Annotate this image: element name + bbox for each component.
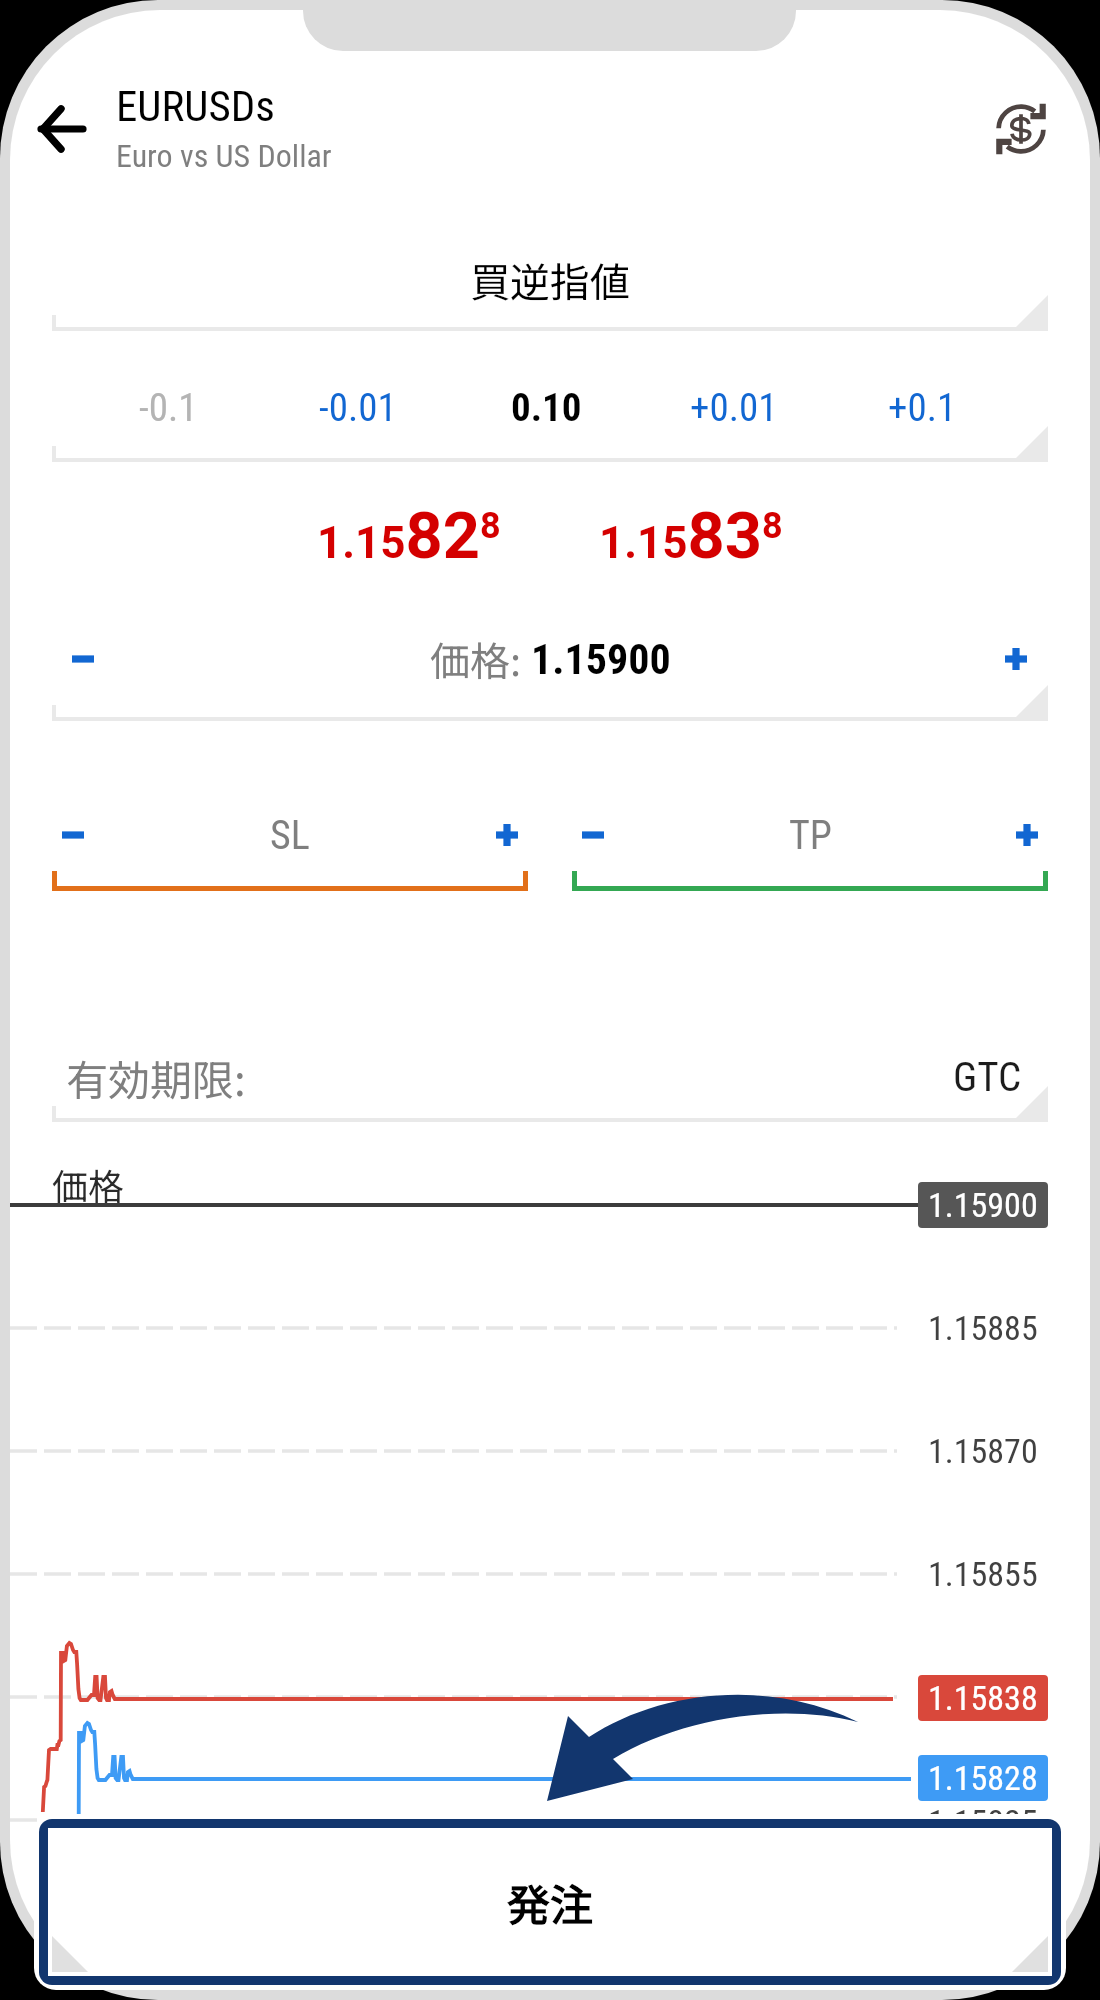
staticText: 1.15885 (928, 1308, 1038, 1348)
button[interactable]: Increase (973, 617, 1059, 701)
staticText: +0.1 (888, 385, 957, 431)
button[interactable]: 発注 (48, 1828, 1052, 1976)
staticText: 価格 (52, 1158, 125, 1210)
button[interactable]: +0.1 (828, 362, 1016, 454)
button[interactable]: 買逆指値 (10, 242, 1090, 318)
staticText: 1.15828 (928, 1758, 1038, 1798)
button[interactable]: Increase (984, 792, 1070, 878)
staticText: 価格: (430, 630, 531, 688)
staticText: 1.15870 (928, 1431, 1038, 1471)
staticText: 1.15825 (928, 1802, 1038, 1842)
button[interactable]: Back (18, 85, 106, 173)
staticText: EURUSDs (116, 81, 275, 131)
staticText: 買逆指値 (470, 251, 630, 309)
staticText: GTC (953, 1053, 1022, 1101)
button[interactable]: Decrease (30, 792, 116, 878)
staticText: Euro vs US Dollar (116, 137, 332, 175)
staticText: +0.01 (690, 385, 778, 431)
staticText: 発注 (507, 1871, 593, 1933)
button[interactable]: -0.1 (74, 362, 263, 454)
button[interactable]: -0.01 (263, 362, 452, 454)
staticText: 1.15828 (317, 498, 501, 574)
button[interactable]: Increase (464, 792, 550, 878)
staticText: 有効期限: (66, 1047, 246, 1108)
staticText: 1.15838 (928, 1678, 1038, 1718)
button[interactable]: Decrease (40, 617, 126, 701)
button[interactable]: Decrease (550, 792, 636, 878)
staticText: TP (789, 812, 832, 859)
staticText: 1.15900 (928, 1185, 1038, 1225)
button[interactable]: Currency exchange (977, 85, 1065, 173)
staticText: -0.1 (139, 385, 198, 431)
button[interactable]: 有効期限: (66, 1038, 1022, 1116)
staticText: -0.01 (319, 385, 397, 431)
staticText: 1.15900 (531, 635, 671, 684)
staticText: 0.10 (511, 385, 582, 431)
staticText: 1.15855 (928, 1554, 1038, 1594)
button[interactable]: +0.01 (640, 362, 828, 454)
staticText: 1.15838 (599, 498, 783, 574)
button[interactable]: 0.10 (452, 362, 640, 454)
staticText: SL (270, 812, 310, 859)
